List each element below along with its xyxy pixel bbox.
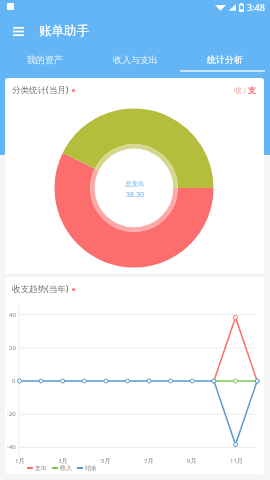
button[interactable]: Menu — [5, 18, 31, 44]
staticText: 40 — [9, 311, 16, 319]
staticText: 收入与支出 — [113, 54, 158, 65]
staticText: 分类统计(当月) — [12, 84, 69, 96]
staticText: 9月 — [187, 457, 197, 465]
staticText: 5月 — [101, 457, 111, 465]
staticText: -40 — [7, 443, 16, 451]
staticText: 20 — [9, 344, 16, 352]
staticText: | — [243, 85, 247, 95]
button[interactable]: 我的资产 — [0, 47, 90, 72]
staticText: 3:48 — [247, 1, 265, 13]
staticText: -20 — [7, 410, 16, 418]
staticText: 38.30 — [126, 190, 144, 200]
button[interactable]: 支 — [247, 85, 257, 95]
staticText: 收入 — [60, 464, 72, 472]
button[interactable]: 统计分析 — [180, 47, 270, 72]
staticText: 支出 — [35, 464, 47, 472]
staticText: 7月 — [144, 457, 154, 465]
staticText: 收支趋势(当年) — [12, 283, 69, 295]
staticText: 统计分析 — [207, 54, 243, 65]
staticText: 11月 — [230, 457, 243, 465]
staticText: 1月 — [15, 457, 25, 465]
button[interactable]: 收 — [233, 85, 243, 95]
staticText: 支 — [248, 85, 256, 95]
staticText: 总支出 — [125, 180, 145, 188]
staticText: 收 — [234, 85, 242, 95]
staticText: 我的资产 — [27, 54, 63, 65]
button[interactable]: 收入与支出 — [90, 47, 180, 72]
staticText: 账单助手 — [39, 23, 89, 39]
staticText: 结余 — [85, 464, 97, 472]
staticText: 0 — [12, 377, 16, 385]
staticText: 3月 — [58, 457, 68, 465]
